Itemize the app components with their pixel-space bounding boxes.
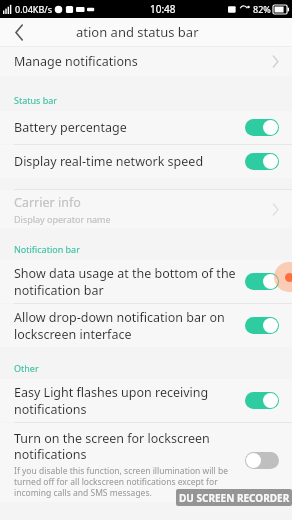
staticText: Allow drop-down notification bar on lock…: [14, 309, 225, 342]
button[interactable]: Display real-time network speed: [0, 145, 292, 178]
button[interactable]: On: [245, 392, 279, 409]
staticText: 82%: [253, 3, 271, 15]
button[interactable]: On: [245, 153, 279, 170]
button[interactable]: Turn on the screen for lockscreen notifi…: [0, 423, 292, 502]
staticText: 10:48: [150, 2, 176, 16]
button[interactable]: Manage notifications: [0, 47, 292, 76]
staticText: Easy Light flashes upon receiving notifi…: [14, 384, 209, 417]
staticText: 0.04KB/s: [15, 3, 52, 15]
staticText: Show data usage at the bottom of the not…: [14, 265, 236, 298]
button[interactable]: Allow drop-down notification bar on lock…: [0, 304, 292, 347]
staticText: Manage notifications: [14, 53, 138, 70]
staticText: Carrier info: [14, 194, 81, 211]
staticText: ation and status bar: [76, 23, 199, 41]
staticText: Display operator name: [14, 213, 111, 225]
staticText: If you disable this function, screen ill…: [14, 465, 228, 498]
button[interactable]: Show data usage at the bottom of the not…: [0, 260, 292, 303]
button[interactable]: Screen recorder: [274, 262, 292, 292]
button[interactable]: Battery percentage: [0, 111, 292, 144]
staticText: DU SCREEN RECORDER: [179, 491, 290, 505]
staticText: Battery percentage: [14, 119, 127, 136]
button[interactable]: On: [245, 273, 279, 290]
button[interactable]: Off: [245, 452, 279, 469]
staticText: Other: [14, 362, 39, 374]
staticText: Turn on the screen for lockscreen notifi…: [14, 430, 210, 462]
button[interactable]: On: [245, 317, 279, 334]
button[interactable]: Easy Light flashes upon receiving notifi…: [0, 379, 292, 422]
button[interactable]: On: [245, 119, 279, 136]
button[interactable]: Carrier info: [0, 190, 292, 228]
staticText: Notification bar: [14, 243, 80, 255]
staticText: Display real-time network speed: [14, 153, 204, 170]
button[interactable]: Back: [0, 18, 38, 46]
staticText: Status bar: [14, 94, 58, 106]
